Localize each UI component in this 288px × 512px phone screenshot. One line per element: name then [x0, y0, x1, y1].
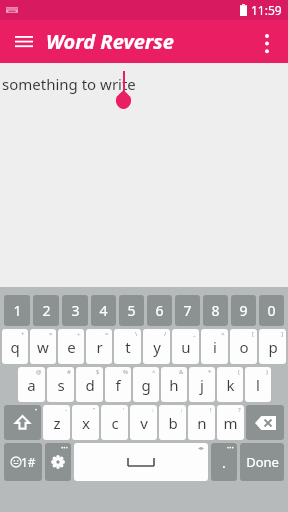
button[interactable]: Done: [240, 443, 284, 481]
staticText: y: [153, 337, 161, 357]
staticText: *: [208, 368, 212, 376]
staticText: ÷: [77, 330, 81, 338]
staticText: v: [140, 413, 148, 433]
staticText: j: [200, 375, 204, 395]
button[interactable]: f: [105, 367, 131, 402]
button[interactable]: 2: [33, 295, 59, 326]
button[interactable]: w: [30, 329, 56, 364]
button[interactable]: [0, 63, 288, 287]
staticText: 6: [155, 301, 164, 320]
staticText: z: [53, 413, 61, 433]
staticText: ': [123, 406, 125, 414]
button[interactable]: 7: [175, 295, 200, 326]
staticText: -: [65, 406, 67, 414]
staticText: $: [96, 368, 100, 376]
staticText: something to write: [2, 74, 136, 94]
button[interactable]: 4: [91, 295, 116, 326]
staticText: \: [135, 330, 138, 338]
staticText: o: [239, 337, 249, 357]
staticText: s: [57, 375, 65, 395]
staticText: b: [168, 413, 178, 433]
button[interactable]: u: [172, 329, 199, 364]
button[interactable]: 1: [4, 295, 30, 326]
staticText: 7: [183, 301, 192, 320]
button[interactable]: p: [259, 329, 286, 364]
button[interactable]: b: [159, 405, 186, 440]
button[interactable]: r: [86, 329, 112, 364]
staticText: a: [27, 375, 36, 395]
staticText: Word Reverse: [46, 28, 174, 55]
button[interactable]: v: [130, 405, 157, 440]
staticText: ?: [238, 406, 241, 414]
button[interactable]: 0: [259, 295, 284, 326]
button[interactable]: 3: [62, 295, 88, 326]
staticText: f: [115, 375, 121, 395]
staticText: p: [268, 337, 278, 357]
button[interactable]: h: [161, 367, 187, 402]
staticText: 2: [42, 301, 51, 320]
staticText: •••: [61, 444, 68, 452]
button[interactable]: Symbols: [4, 443, 42, 481]
staticText: u: [181, 337, 191, 357]
staticText: 11:59: [251, 2, 282, 18]
button[interactable]: 6: [147, 295, 172, 326]
button[interactable]: l: [245, 367, 271, 402]
button[interactable]: z: [43, 405, 70, 440]
button[interactable]: k: [217, 367, 243, 402]
staticText: !: [210, 406, 212, 414]
button[interactable]: s: [47, 367, 74, 402]
button[interactable]: Shift: [4, 405, 41, 440]
button[interactable]: i: [201, 329, 228, 364]
button[interactable]: q: [2, 329, 28, 364]
staticText: <: [221, 330, 225, 338]
button[interactable]: e: [58, 329, 84, 364]
staticText: &: [179, 368, 184, 376]
staticText: Done: [246, 453, 279, 471]
button[interactable]: Menu: [8, 26, 40, 58]
staticText: %: [123, 368, 128, 376]
staticText: l: [256, 375, 260, 395]
button[interactable]: Space: [74, 443, 208, 481]
button[interactable]: More options: [252, 27, 282, 57]
staticText: x: [82, 413, 90, 433]
staticText: h: [169, 375, 179, 395]
button[interactable]: t: [114, 329, 141, 364]
staticText: t: [125, 337, 131, 357]
staticText: +: [21, 330, 25, 338]
button[interactable]: 8: [203, 295, 228, 326]
staticText: 0: [267, 301, 276, 320]
button[interactable]: m: [217, 405, 244, 440]
staticText: .: [222, 453, 226, 472]
button[interactable]: g: [133, 367, 159, 402]
staticText: i: [213, 337, 217, 357]
button[interactable]: Keyboard settings: [45, 443, 71, 481]
button[interactable]: a: [18, 367, 45, 402]
button[interactable]: 5: [119, 295, 144, 326]
staticText: :: [152, 406, 154, 414]
staticText: ;: [181, 406, 183, 414]
staticText: •: [35, 406, 38, 414]
staticText: 3: [71, 301, 80, 320]
staticText: m: [223, 413, 238, 433]
staticText: w: [37, 337, 49, 357]
staticText: [: [252, 330, 254, 338]
staticText: #: [67, 368, 71, 376]
button[interactable]: d: [76, 367, 103, 402]
staticText: 8: [211, 301, 220, 320]
button[interactable]: c: [101, 405, 128, 440]
staticText: ": [93, 406, 96, 414]
button[interactable]: 9: [231, 295, 256, 326]
button[interactable]: y: [143, 329, 170, 364]
staticText: 1: [13, 301, 22, 320]
staticText: _: [193, 330, 196, 338]
staticText: k: [226, 375, 235, 395]
button[interactable]: .: [211, 443, 237, 481]
staticText: r: [96, 337, 103, 357]
button[interactable]: j: [189, 367, 215, 402]
button[interactable]: n: [188, 405, 215, 440]
button[interactable]: x: [72, 405, 99, 440]
staticText: ^: [152, 368, 156, 376]
staticText: (: [238, 368, 240, 376]
button[interactable]: o: [230, 329, 257, 364]
button[interactable]: Backspace: [246, 405, 284, 440]
